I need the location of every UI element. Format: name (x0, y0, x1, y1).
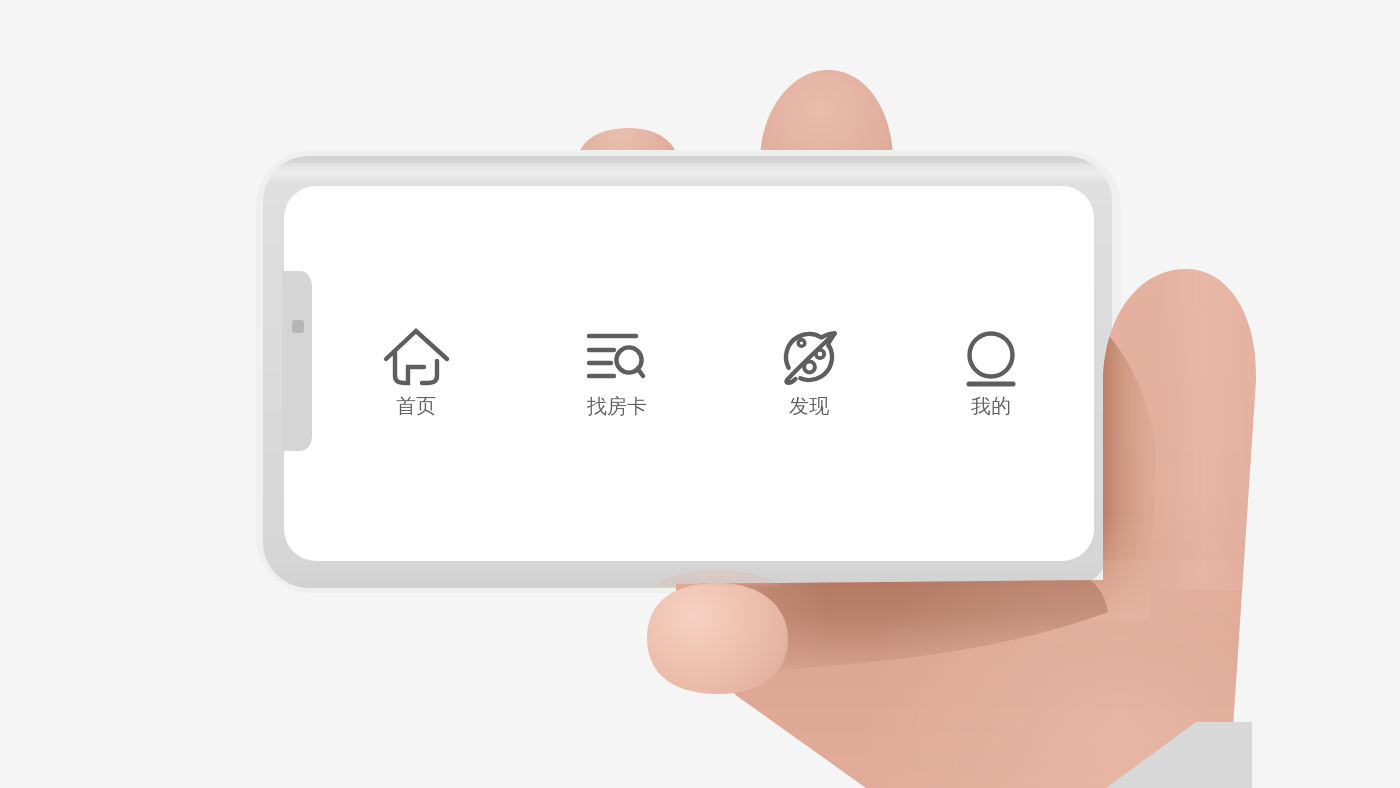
staticText: 发现 (789, 394, 829, 418)
button[interactable]: 首页 (368, 322, 464, 422)
staticText: 找房卡 (587, 394, 647, 418)
button[interactable]: 我的 (943, 322, 1039, 422)
button[interactable]: 找房卡 (569, 322, 665, 422)
staticText: 我的 (971, 394, 1011, 418)
staticText: 首页 (396, 394, 436, 418)
button[interactable]: 发现 (761, 322, 857, 422)
